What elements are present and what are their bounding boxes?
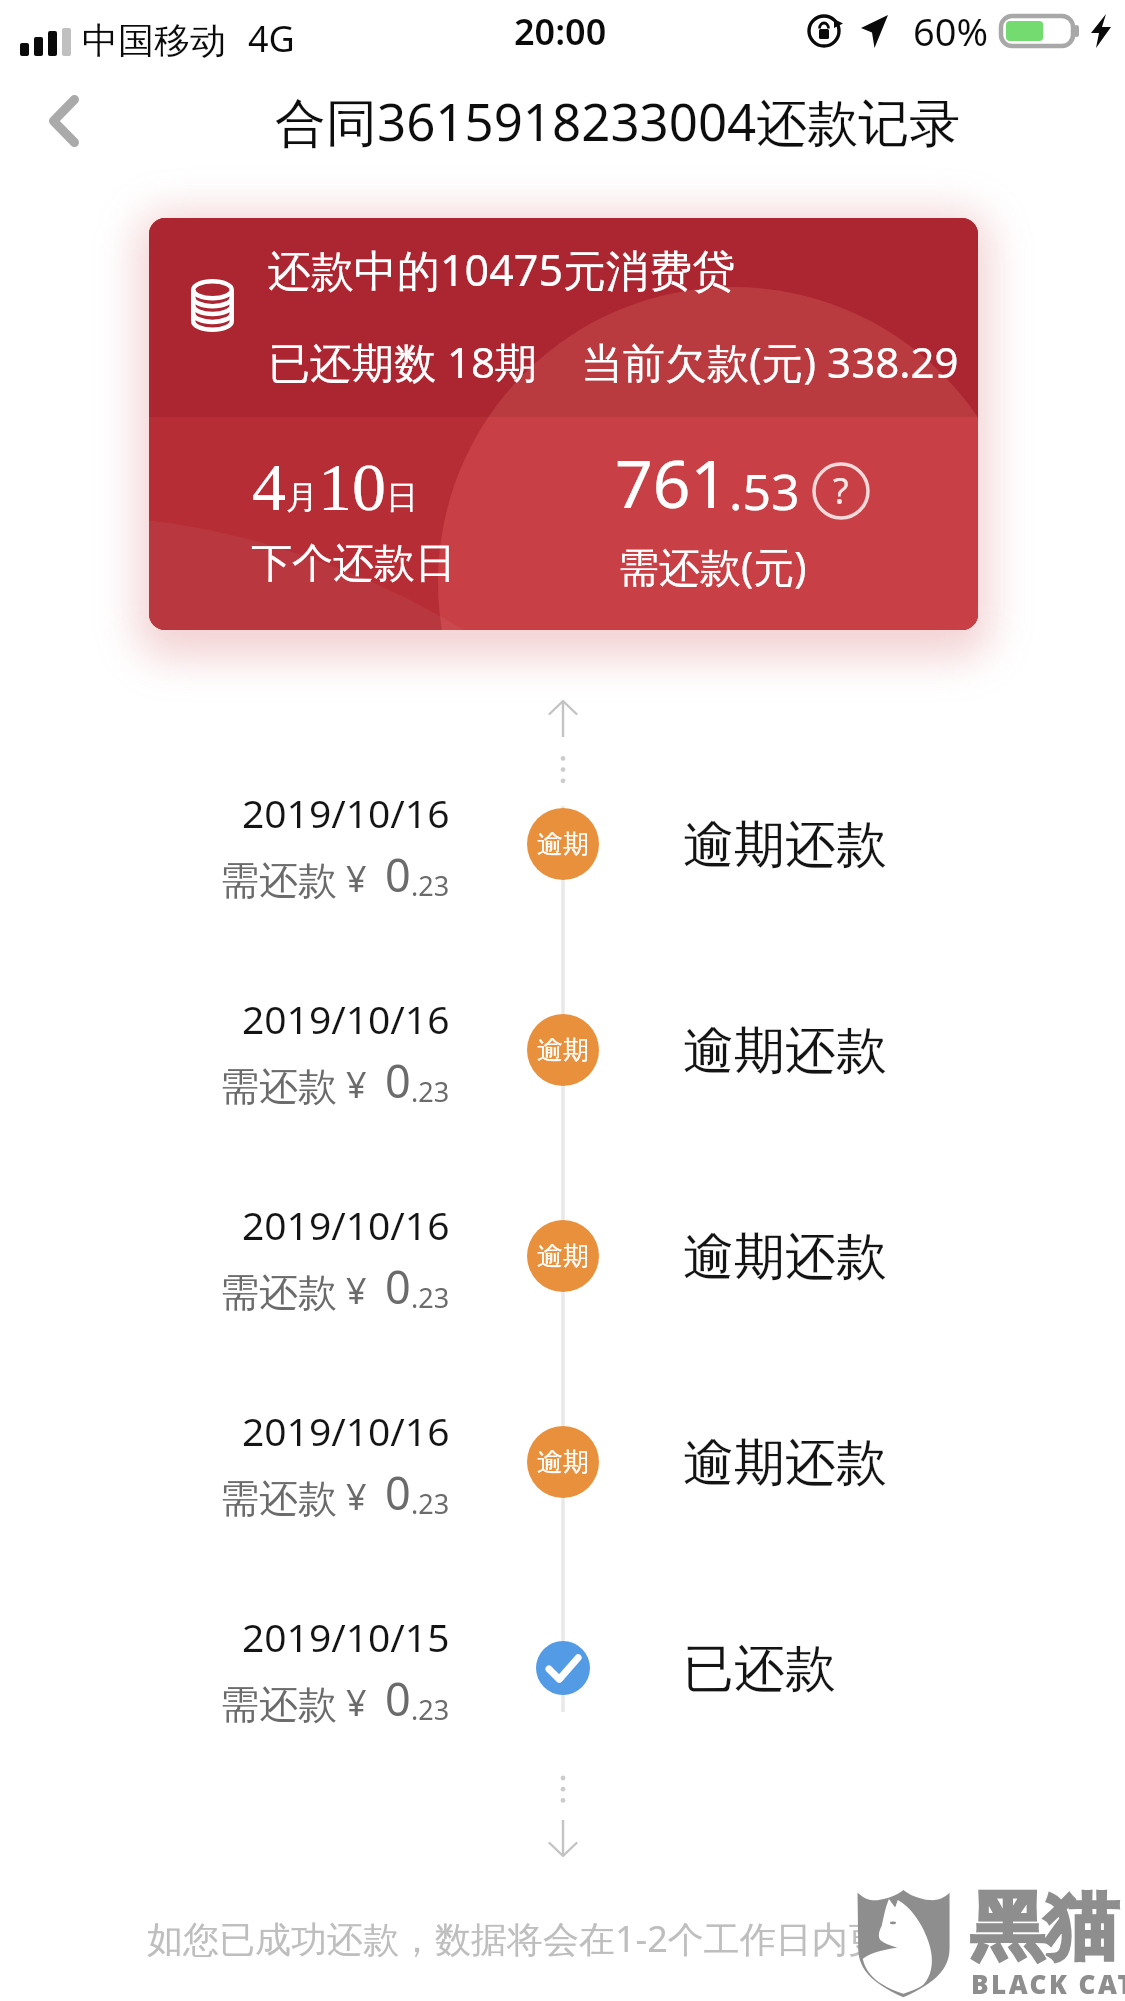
staticText: 合同3615918233004还款记录: [275, 86, 961, 156]
staticText: 需还款(元): [618, 538, 807, 594]
staticText: 下个还款日: [251, 538, 456, 590]
staticText: 逾期还款: [683, 1225, 887, 1289]
staticText: 761: [615, 437, 729, 527]
staticText: 已还款: [683, 1637, 836, 1701]
staticText: 已还期数 18期: [268, 333, 537, 390]
button[interactable]: 还款中的10475元消费贷: [149, 218, 978, 630]
staticText: 逾期: [537, 1034, 589, 1067]
button[interactable]: 2019/10/16: [150, 786, 450, 905]
staticText: 需还款: [220, 1474, 337, 1523]
staticText: 需还款: [220, 1268, 337, 1317]
staticText: 需还款: [220, 1680, 337, 1729]
staticText: ¥: [346, 1266, 367, 1315]
staticText: .23: [411, 1279, 450, 1316]
staticText: ¥: [346, 854, 367, 903]
button[interactable]: Back: [12, 69, 116, 173]
staticText: 当前欠款(元) 338.29: [581, 333, 959, 390]
staticText: 中国移动: [82, 18, 226, 63]
staticText: .23: [411, 1485, 450, 1522]
button[interactable]: 逾期: [527, 1220, 599, 1292]
staticText: 0: [385, 844, 411, 905]
staticText: .53: [729, 457, 800, 525]
staticText: 逾期: [537, 828, 589, 861]
staticText: .23: [411, 867, 450, 904]
staticText: 0: [385, 1462, 411, 1523]
button[interactable]: 逾期还款: [683, 1431, 887, 1495]
staticText: 如您已成功还款，数据将会在1-2个工作日内更新。: [147, 1914, 956, 1963]
staticText: 日: [386, 477, 418, 517]
staticText: ?: [833, 466, 849, 515]
button[interactable]: 逾期还款: [683, 813, 887, 877]
staticText: 逾期: [537, 1446, 589, 1479]
staticText: 4: [252, 449, 286, 524]
button[interactable]: 2019/10/16: [150, 1404, 450, 1523]
staticText: 0: [385, 1256, 411, 1317]
staticText: 2019/10/16: [242, 1198, 450, 1251]
button[interactable]: 逾期: [527, 1014, 599, 1086]
staticText: BLACK CAT: [971, 1966, 1125, 2001]
staticText: 2019/10/16: [242, 786, 450, 839]
staticText: 4G: [248, 14, 295, 63]
staticText: .23: [411, 1691, 450, 1728]
button[interactable]: 逾期: [527, 808, 599, 880]
staticText: 10: [318, 449, 386, 524]
staticText: 需还款: [220, 856, 337, 905]
staticText: 还款中的10475元消费贷: [268, 240, 735, 299]
staticText: 0: [385, 1668, 411, 1729]
button[interactable]: 2019/10/15: [150, 1610, 450, 1729]
staticText: 20:00: [514, 7, 607, 56]
staticText: 2019/10/15: [242, 1610, 450, 1663]
staticText: 需还款: [220, 1062, 337, 1111]
staticText: 60%: [913, 5, 989, 57]
button[interactable]: 逾期还款: [683, 1019, 887, 1083]
staticText: 2019/10/16: [242, 992, 450, 1045]
staticText: 逾期: [537, 1240, 589, 1273]
button[interactable]: 2019/10/16: [150, 992, 450, 1111]
staticText: 逾期还款: [683, 1019, 887, 1083]
button[interactable]: 逾期还款: [683, 1225, 887, 1289]
staticText: 0: [385, 1050, 411, 1111]
staticText: ¥: [346, 1472, 367, 1521]
button[interactable]: 2019/10/16: [150, 1198, 450, 1317]
button[interactable]: Paid: [536, 1641, 590, 1695]
button[interactable]: 逾期: [527, 1426, 599, 1498]
staticText: ¥: [346, 1678, 367, 1727]
button[interactable]: Help: [812, 462, 870, 520]
staticText: 2019/10/16: [242, 1404, 450, 1457]
button[interactable]: 已还款: [683, 1637, 836, 1701]
staticText: ¥: [346, 1060, 367, 1109]
staticText: 逾期还款: [683, 1431, 887, 1495]
staticText: 黑猫: [970, 1881, 1118, 1974]
staticText: 逾期还款: [683, 813, 887, 877]
staticText: .23: [411, 1073, 450, 1110]
staticText: 月: [286, 477, 318, 517]
